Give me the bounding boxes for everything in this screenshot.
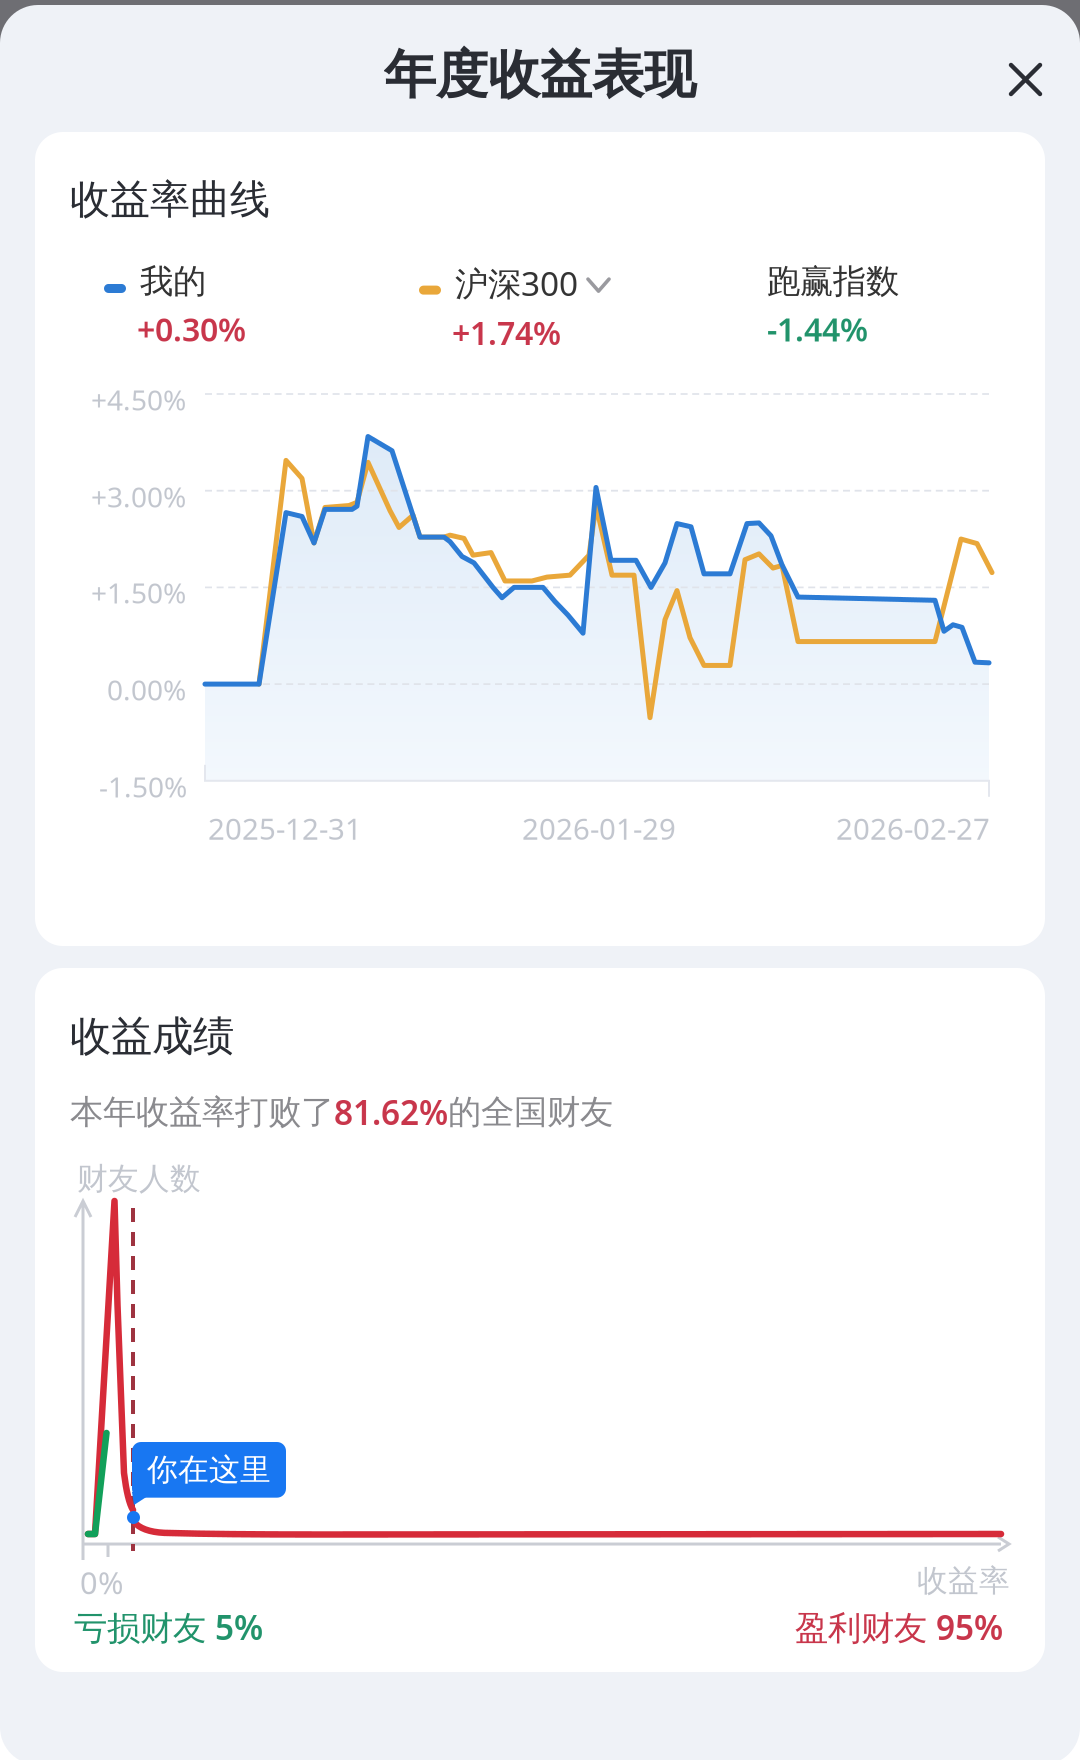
staticText: 0.00%: [107, 671, 186, 708]
staticText: 2025-12-31: [208, 809, 362, 848]
staticText: 本年收益率打败了: [70, 1092, 334, 1133]
staticText: +3.00%: [91, 478, 186, 515]
staticText: 81.62%: [334, 1090, 448, 1134]
staticText: +1.74%: [452, 311, 561, 354]
staticText: 沪深300: [455, 261, 578, 305]
staticText: +4.50%: [91, 381, 186, 418]
staticText: 盈利财友 95%: [795, 1605, 1003, 1649]
staticText: +1.50%: [91, 574, 186, 611]
staticText: 收益率: [917, 1562, 1010, 1600]
staticText: 2026-01-29: [522, 809, 676, 848]
staticText: 2026-02-27: [836, 809, 990, 848]
staticText: 你在这里: [147, 1451, 271, 1489]
button[interactable]: 关闭: [993, 47, 1058, 112]
staticText: 财友人数: [77, 1160, 201, 1198]
staticText: 收益成绩: [70, 1011, 234, 1062]
staticText: 收益率曲线: [70, 175, 270, 224]
staticText: 的全国财友: [448, 1092, 613, 1133]
staticText: +0.30%: [137, 308, 246, 350]
staticText: 我的: [140, 261, 206, 302]
staticText: -1.50%: [99, 768, 187, 805]
staticText: -1.44%: [767, 308, 868, 350]
staticText: 0%: [80, 1562, 123, 1603]
staticText: 年度收益表现: [384, 43, 696, 107]
staticText: 亏损财友 5%: [74, 1605, 263, 1649]
staticText: 跑赢指数: [767, 261, 899, 302]
